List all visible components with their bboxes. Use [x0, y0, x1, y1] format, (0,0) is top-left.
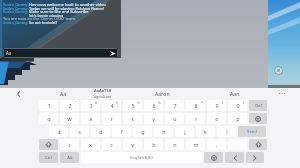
button[interactable]: Aa — [3, 48, 118, 58]
button[interactable]: e — [81, 113, 100, 124]
button[interactable]: Del — [249, 100, 267, 111]
button[interactable]: f — [112, 126, 131, 137]
button[interactable]: d — [91, 126, 110, 137]
button[interactable]: p — [228, 113, 247, 124]
button[interactable]: Jump — [274, 66, 283, 75]
button[interactable]: r — [102, 113, 121, 124]
button[interactable]: AaAaT38 — [88, 88, 118, 99]
staticText: s — [78, 128, 81, 135]
button[interactable]: Aa — [38, 88, 88, 99]
button[interactable]: , — [207, 139, 226, 150]
button[interactable]: z — [60, 139, 79, 150]
button[interactable]: Alt — [60, 152, 79, 163]
button[interactable]: Emoji — [204, 152, 223, 163]
button[interactable]: o — [207, 113, 226, 124]
staticText: p — [236, 115, 240, 122]
button[interactable]: c — [102, 139, 121, 150]
staticText: m — [193, 141, 199, 148]
button[interactable]: Ctrl — [39, 152, 58, 163]
button[interactable]: 2 — [60, 100, 79, 111]
staticText: , — [216, 141, 218, 148]
button[interactable]: l — [217, 126, 236, 137]
button[interactable]: Send — [238, 126, 266, 137]
button[interactable]: English (UK) — [81, 152, 202, 163]
staticText: d — [99, 128, 103, 135]
button[interactable]: Previous — [225, 152, 244, 163]
button[interactable]: n — [165, 139, 184, 150]
button[interactable]: Shift — [39, 139, 58, 150]
staticText: Ctrl — [45, 155, 52, 161]
button[interactable]: h — [154, 126, 173, 137]
button[interactable]: 0 — [228, 100, 247, 111]
button[interactable]: v — [123, 139, 142, 150]
button[interactable]: u — [165, 113, 184, 124]
button[interactable]: 4 — [102, 100, 121, 111]
button[interactable]: t — [123, 113, 142, 124]
staticText: y — [152, 115, 155, 122]
staticText: # — [95, 100, 98, 105]
staticText: 9 — [215, 102, 219, 109]
staticText: j — [184, 128, 186, 135]
button[interactable]: a — [49, 126, 68, 137]
staticText: Aaron — [155, 90, 170, 97]
staticText: u — [173, 115, 177, 122]
button[interactable]: Collapse — [0, 88, 38, 99]
button[interactable]: 6 — [144, 100, 163, 111]
staticText: agmdi.om — [94, 94, 112, 99]
staticText: Make sure to like and Subscribe — [29, 9, 89, 13]
staticText: f — [121, 128, 123, 135]
button[interactable]: 5 — [123, 100, 142, 111]
staticText: So get tonight? — [29, 20, 58, 24]
staticText: 5 — [131, 102, 135, 109]
staticText: Del — [255, 103, 262, 109]
staticText: i — [195, 115, 197, 122]
staticText: You are now on the 'Giants (3)20' team. — [3, 16, 77, 20]
staticText: q — [47, 115, 51, 122]
button[interactable]: More options — [263, 88, 300, 99]
button[interactable]: x — [81, 139, 100, 150]
button[interactable]: g — [133, 126, 152, 137]
button[interactable]: s — [70, 126, 89, 137]
staticText: Raiden_Gaming: — [3, 9, 29, 13]
button[interactable]: 7 — [165, 100, 184, 111]
button[interactable]: 9 — [207, 100, 226, 111]
button[interactable]: i — [186, 113, 205, 124]
staticText: Aa — [60, 90, 67, 97]
button[interactable]: j — [175, 126, 194, 137]
staticText: Aa — [6, 50, 12, 56]
staticText: r — [110, 115, 113, 122]
staticText: ) — [243, 100, 245, 105]
button[interactable]: w — [60, 113, 79, 124]
button[interactable]: y — [144, 113, 163, 124]
button[interactable]: Settings — [249, 113, 267, 124]
staticText: a — [57, 128, 61, 135]
button[interactable]: k — [196, 126, 215, 137]
button[interactable]: b — [144, 139, 163, 150]
staticText: & — [158, 100, 161, 105]
button[interactable]: 1 — [39, 100, 58, 111]
button[interactable]: Shift — [249, 139, 267, 150]
staticText: Raiden_Gaming: — [3, 2, 29, 6]
staticText: Alt — [67, 155, 73, 161]
staticText: h — [162, 128, 166, 135]
button[interactable]: Aan — [206, 88, 263, 99]
staticText: z — [68, 141, 71, 148]
button[interactable]: m — [186, 139, 205, 150]
staticText: 7 — [173, 102, 177, 109]
staticText: c — [110, 141, 113, 148]
button[interactable]: 3 — [81, 100, 100, 111]
staticText: 3 — [89, 102, 93, 109]
staticText: ( — [222, 100, 224, 105]
button[interactable]: Next — [246, 152, 264, 163]
staticText: e — [89, 115, 93, 122]
button[interactable]: 8 — [186, 100, 205, 111]
staticText: . — [237, 141, 239, 148]
staticText: x — [89, 141, 92, 148]
staticText: 8 — [194, 102, 198, 109]
button[interactable]: q — [39, 113, 58, 124]
staticText: Today we will be playing Robloxs flappy! — [29, 6, 104, 10]
staticText: 6 — [152, 102, 156, 109]
staticText: g — [141, 128, 145, 135]
button[interactable]: Aaron — [118, 88, 206, 99]
